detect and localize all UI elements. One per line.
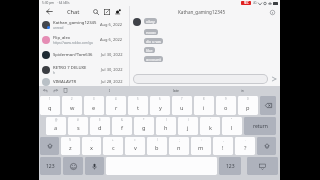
staticText: REC [244,1,249,5]
staticText: ) [188,118,189,122]
staticText: 4G [253,1,257,5]
button[interactable] [63,157,83,175]
button[interactable]: 9 [216,96,236,115]
staticText: https://www.roblox.com/ga [53,41,93,45]
button[interactable]: Undo [42,87,49,94]
button[interactable] [247,157,278,175]
staticText: . [245,138,246,142]
staticText: y [159,104,162,112]
button[interactable]: Back [45,7,54,16]
button[interactable]: Paste [62,87,69,94]
button[interactable]: 5 [128,96,148,115]
staticText: RETRO 7 DELUXE [53,65,87,71]
button[interactable]: ( [156,117,176,135]
staticText: account [146,57,161,62]
button[interactable]: # [68,117,88,135]
button[interactable]: Flip_alex [39,32,129,47]
button[interactable]: 2 [62,96,82,115]
button[interactable]: / [147,137,167,155]
staticText: Kathan_gaming12345 [178,9,226,15]
button[interactable]: . [235,137,255,155]
button[interactable]: Compose [102,7,111,16]
staticText: , [223,138,224,142]
button[interactable]: ' [200,117,220,135]
staticText: nooo [146,30,156,35]
staticText: 6 [159,97,161,101]
button[interactable]: nooo [144,29,158,35]
button[interactable]: @ [46,117,66,135]
button[interactable]: & [112,117,132,135]
button[interactable]: RETRO 7 DELUXE [39,62,129,77]
button[interactable]: okay [144,18,157,24]
staticText: j [187,124,189,132]
staticText: I [109,88,111,93]
staticText: 7 [181,97,183,101]
staticText: in [241,88,244,93]
button[interactable]: : [191,137,211,155]
button[interactable]: Search [91,7,100,16]
button[interactable]: + [103,137,123,155]
button[interactable]: ; [169,137,189,155]
staticText: 9 [225,97,227,101]
staticText: unread [53,26,64,30]
button[interactable] [40,137,59,155]
button[interactable]: Redo [52,87,59,94]
button[interactable]: 6 [150,96,170,115]
button[interactable]: 1 [40,96,60,115]
staticText: return [253,123,268,130]
button[interactable]: " [222,117,242,135]
staticText: + [112,138,114,142]
button[interactable] [257,137,276,155]
staticText: a [54,124,58,132]
button[interactable]: like [144,47,155,53]
staticText: 0 [247,97,249,101]
button[interactable]: $ [90,117,110,135]
button[interactable]: % [61,137,80,155]
button[interactable]: 8 [194,96,214,115]
button[interactable]: * [134,117,154,135]
staticText: ; [179,138,180,142]
staticText: late [173,88,179,93]
button[interactable]: 4 [106,96,126,115]
staticText: ' [210,118,211,122]
staticText: 4 [115,97,117,101]
staticText: Spiderman?Tom636 [53,52,93,58]
button[interactable]: 7 [172,96,192,115]
button[interactable]: VIMALAVTR [39,77,129,86]
button[interactable]: return [244,117,276,135]
button[interactable]: 0 [238,96,258,115]
button[interactable]: - [82,137,101,155]
button[interactable]: 3 [84,96,104,115]
button[interactable]: ) [178,117,198,135]
staticText: l [231,124,233,132]
button[interactable]: Notifications [113,7,122,16]
staticText: t [137,104,140,112]
staticText: n [177,144,181,152]
staticText: * [143,118,145,122]
staticText: Jul 30, 2022 [101,52,123,57]
button[interactable]: Info [268,8,276,16]
button[interactable]: , [213,137,233,155]
button[interactable]: Send [270,75,278,83]
button[interactable] [85,157,104,175]
staticText: w [70,104,75,112]
button[interactable]: Spiderman?Tom636 [39,47,129,62]
button[interactable]: do u wa [144,38,163,44]
staticText: 5 [137,97,139,101]
staticText: = [134,138,136,142]
staticText: $ [99,118,101,122]
staticText: ( [166,118,167,122]
button[interactable]: account [144,56,163,62]
button[interactable]: = [125,137,145,155]
staticText: 5:30 pm [42,1,55,5]
button[interactable] [260,96,276,115]
staticText: @ [55,118,58,122]
button[interactable]: 123 [219,157,241,175]
staticText: f [121,124,123,132]
staticText: s [77,124,80,132]
button[interactable]: 123 [40,157,61,175]
staticText: v [134,144,137,152]
button[interactable]: Kathan_gaming12345 [39,17,129,32]
